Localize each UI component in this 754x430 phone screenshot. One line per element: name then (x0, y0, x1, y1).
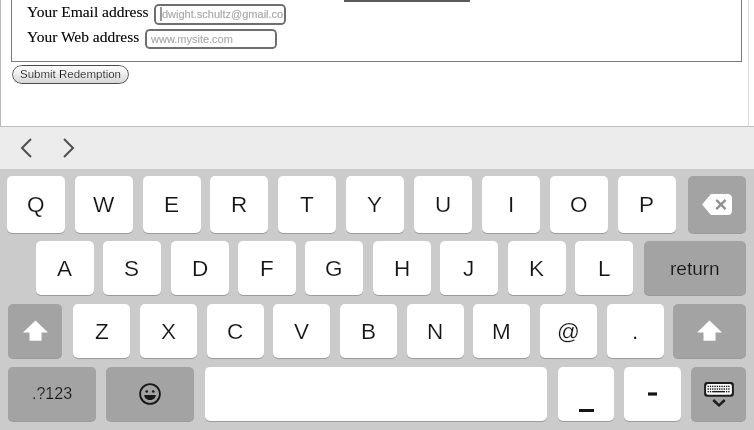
button[interactable]: return (644, 241, 746, 295)
button[interactable]: .?123 (8, 367, 96, 421)
button[interactable]: N (407, 304, 464, 358)
button[interactable]: F (238, 241, 296, 295)
button[interactable]: S (103, 241, 161, 295)
button[interactable]: Q (7, 176, 65, 233)
button[interactable]: I (482, 176, 540, 233)
button[interactable]: V (273, 304, 330, 358)
staticText: Z (95, 319, 109, 344)
staticText: B (361, 319, 377, 344)
staticText: Q (27, 192, 45, 217)
staticText: H (394, 256, 411, 281)
staticText: P (639, 192, 655, 217)
button[interactable]: C (207, 304, 264, 358)
button[interactable]: X (140, 304, 197, 358)
staticText: . (632, 319, 639, 344)
button[interactable]: R (210, 176, 268, 233)
staticText: N (427, 319, 444, 344)
staticText: E (164, 192, 180, 217)
button[interactable]: . (607, 304, 664, 358)
staticText: Your Web address (27, 28, 140, 45)
button[interactable]: A (36, 241, 94, 295)
staticText: J (463, 256, 475, 281)
staticText: L (598, 256, 611, 281)
staticText: Your Web address (27, 28, 140, 45)
button[interactable]: D (171, 241, 229, 295)
staticText: U (435, 192, 452, 217)
staticText: S (124, 256, 140, 281)
staticText: Your Email address (27, 3, 149, 20)
staticText: R (231, 192, 248, 217)
staticText: dwight.schultz@gmail.com (162, 8, 286, 20)
button[interactable]: K (508, 241, 566, 295)
staticText: W (93, 192, 115, 217)
staticText: Submit Redemption (20, 68, 121, 81)
button[interactable]: G (305, 241, 363, 295)
button[interactable]: Submit Redemption (12, 65, 129, 84)
staticText: A (57, 256, 73, 281)
button[interactable]: Shift (673, 304, 746, 358)
staticText: I (508, 192, 515, 217)
button[interactable]: L (575, 241, 633, 295)
button[interactable]: Z (73, 304, 130, 358)
button[interactable]: Shift (8, 304, 62, 358)
staticText: G (325, 256, 343, 281)
button[interactable]: P (618, 176, 676, 233)
button[interactable]: Next field (51, 131, 85, 165)
button[interactable]: dwight.schultz@gmail.com (154, 4, 286, 25)
button[interactable]: H (373, 241, 431, 295)
button[interactable]: T (278, 176, 336, 233)
staticText: return (670, 258, 720, 279)
staticText: C (227, 319, 244, 344)
staticText: Y (367, 192, 383, 217)
button[interactable]: Backspace (688, 176, 746, 233)
button[interactable] (558, 367, 614, 421)
button[interactable]: M (473, 304, 530, 358)
staticText: @ (557, 319, 580, 344)
button[interactable]: U (414, 176, 472, 233)
staticText: X (161, 319, 177, 344)
button[interactable]: www.mysite.com (145, 29, 277, 49)
staticText: M (492, 319, 511, 344)
button[interactable]: @ (540, 304, 597, 358)
button[interactable]: E (143, 176, 201, 233)
staticText: T (300, 192, 314, 217)
staticText: D (192, 256, 209, 281)
staticText: .?123 (32, 385, 73, 403)
button[interactable] (624, 367, 681, 421)
staticText: O (570, 192, 588, 217)
button[interactable]: Previous field (9, 131, 43, 165)
button[interactable]: W (75, 176, 133, 233)
staticText: Your Email address (27, 3, 149, 20)
button[interactable]: B (340, 304, 397, 358)
button[interactable]: Y (346, 176, 404, 233)
button[interactable]: Hide keyboard (691, 367, 746, 421)
staticText: F (260, 256, 274, 281)
button[interactable]: O (550, 176, 608, 233)
button[interactable]: J (440, 241, 498, 295)
button[interactable]: Emoji (106, 367, 194, 421)
staticText: V (294, 319, 310, 344)
staticText: www.mysite.com (151, 33, 233, 45)
staticText: K (529, 256, 545, 281)
